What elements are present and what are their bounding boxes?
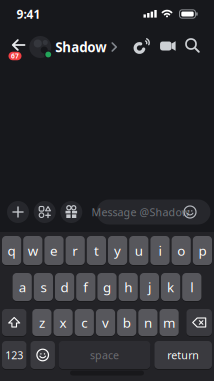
staticText: t <box>94 242 99 259</box>
button[interactable]: w <box>23 236 42 265</box>
button[interactable]: Voice Call <box>131 35 153 57</box>
button[interactable]: Video Call <box>157 35 179 57</box>
staticText: x <box>60 314 67 331</box>
staticText: i <box>158 242 161 259</box>
button[interactable]: q <box>2 236 21 265</box>
button[interactable]: e <box>44 236 64 265</box>
staticText: k <box>167 278 174 296</box>
button[interactable]: y <box>108 236 127 265</box>
button[interactable]: return <box>154 341 212 369</box>
staticText: b <box>123 314 131 331</box>
staticText: q <box>8 242 16 259</box>
button[interactable]: i <box>150 236 170 265</box>
staticText: s <box>40 278 46 296</box>
button[interactable]: Numbers <box>2 341 26 369</box>
staticText: 67 <box>11 52 19 60</box>
staticText: Shadow <box>55 38 106 56</box>
button[interactable]: p <box>193 236 212 265</box>
button[interactable]: Back <box>3 38 31 62</box>
staticText: g <box>103 278 111 296</box>
button[interactable]: k <box>161 273 180 301</box>
button[interactable]: Shadow <box>28 35 118 59</box>
staticText: d <box>61 278 69 296</box>
button[interactable]: v <box>96 309 115 336</box>
staticText: y <box>114 242 121 259</box>
staticText: a <box>19 278 26 296</box>
button[interactable]: m <box>159 309 179 336</box>
button[interactable]: j <box>140 273 159 301</box>
button[interactable]: Emoji <box>30 341 55 369</box>
button[interactable]: r <box>66 236 85 265</box>
button[interactable]: g <box>97 273 117 301</box>
button[interactable]: Shift <box>2 309 26 336</box>
button[interactable]: n <box>138 309 157 336</box>
staticText: e <box>50 242 58 259</box>
staticText: o <box>177 242 185 259</box>
staticText: Message @Shadow <box>91 205 189 219</box>
staticText: space <box>90 348 119 362</box>
button[interactable]: f <box>76 273 95 301</box>
button[interactable]: Message @Shadow <box>96 199 210 224</box>
staticText: 123 <box>5 348 23 362</box>
button[interactable]: c <box>75 309 94 336</box>
button[interactable]: l <box>182 273 201 301</box>
button[interactable]: space <box>59 341 150 369</box>
button[interactable]: o <box>172 236 191 265</box>
button[interactable]: s <box>34 273 53 301</box>
button[interactable]: h <box>119 273 138 301</box>
staticText: l <box>190 278 193 296</box>
staticText: j <box>148 278 151 296</box>
staticText: f <box>83 278 88 296</box>
button[interactable]: b <box>117 309 136 336</box>
staticText: z <box>39 314 45 331</box>
button[interactable]: t <box>87 236 106 265</box>
staticText: h <box>124 278 132 296</box>
button[interactable]: Gift <box>60 201 82 223</box>
staticText: w <box>28 242 38 259</box>
staticText: return <box>167 348 199 362</box>
button[interactable]: d <box>55 273 74 301</box>
staticText: p <box>198 242 206 259</box>
button[interactable]: a <box>13 273 32 301</box>
staticText: n <box>144 314 152 331</box>
button[interactable]: Delete <box>186 309 212 336</box>
button[interactable]: z <box>32 309 51 336</box>
button[interactable]: Attach <box>7 201 29 223</box>
button[interactable]: u <box>129 236 148 265</box>
button[interactable]: Search <box>182 35 204 57</box>
staticText: r <box>72 242 78 259</box>
staticText: 9:41 <box>16 6 40 22</box>
staticText: c <box>81 314 87 331</box>
button[interactable]: x <box>53 309 73 336</box>
staticText: m <box>163 314 175 331</box>
button[interactable]: Apps <box>34 201 56 223</box>
staticText: u <box>135 242 143 259</box>
staticText: v <box>102 314 109 331</box>
